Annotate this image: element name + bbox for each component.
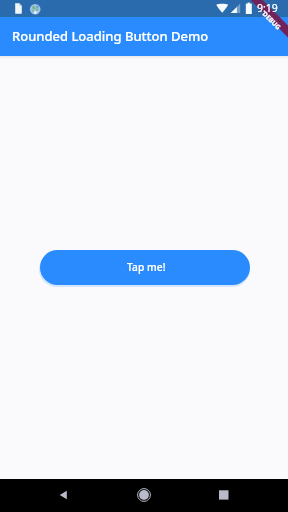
button[interactable]: Recents <box>192 479 288 512</box>
staticText: Tap me! <box>127 260 166 274</box>
staticText: 9:19 <box>257 1 278 15</box>
button[interactable]: Home <box>96 479 192 512</box>
button[interactable]: Tap me! <box>40 250 250 285</box>
button[interactable]: Back <box>0 479 96 512</box>
staticText: DEBUG <box>261 9 283 32</box>
staticText: Rounded Loading Button Demo <box>12 27 209 45</box>
